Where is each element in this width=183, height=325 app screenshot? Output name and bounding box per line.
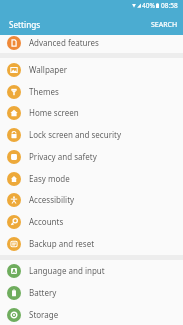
staticText: 40%	[142, 1, 155, 10]
button[interactable]: Backup and reset	[0, 233, 183, 255]
button[interactable]: Privacy and safety	[0, 146, 183, 168]
staticText: Storage	[29, 309, 59, 320]
staticText: Privacy and safety	[29, 151, 97, 162]
staticText: Language and input	[29, 265, 105, 276]
button[interactable]: Lock screen and security	[0, 124, 183, 146]
button[interactable]: Battery	[0, 282, 183, 304]
staticText: Accessibility	[29, 194, 75, 205]
button[interactable]: Storage	[0, 304, 183, 325]
staticText: Backup and reset	[29, 238, 95, 249]
staticText: Battery	[29, 287, 57, 298]
staticText: 08:58	[161, 1, 178, 10]
staticText: Accounts	[29, 216, 64, 227]
button[interactable]: Accounts	[0, 211, 183, 233]
staticText: Lock screen and security	[29, 129, 121, 140]
button[interactable]: Themes	[0, 81, 183, 103]
button[interactable]: Wallpaper	[0, 59, 183, 81]
staticText: Easy mode	[29, 173, 70, 184]
staticText: SEARCH	[151, 20, 178, 30]
button[interactable]: Language and input	[0, 260, 183, 282]
staticText: Themes	[29, 86, 59, 97]
staticText: Advanced features	[29, 37, 99, 48]
button[interactable]: Advanced features	[0, 35, 183, 53]
staticText: Home screen	[29, 107, 79, 118]
button[interactable]: Easy mode	[0, 168, 183, 190]
staticText: Settings	[9, 19, 41, 30]
button[interactable]: SEARCH	[145, 0, 183, 33]
staticText: Wallpaper	[29, 64, 68, 75]
button[interactable]: Home screen	[0, 102, 183, 124]
button[interactable]: Accessibility	[0, 189, 183, 211]
